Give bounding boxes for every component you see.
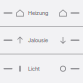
button[interactable]: Licht on: [14, 54, 26, 83]
button[interactable]: Licht off: [57, 54, 69, 83]
button[interactable]: Increase Jalousie: [69, 27, 81, 54]
button[interactable]: Heizung off: [57, 0, 69, 26]
button[interactable]: Increase Heizung: [69, 0, 81, 26]
button[interactable]: Jalousie on: [14, 27, 26, 54]
button[interactable]: Jalousie off: [57, 27, 69, 54]
staticText: Heizung: [28, 10, 48, 16]
button[interactable]: Decrease Jalousie: [2, 27, 14, 54]
button[interactable]: Decrease Licht: [2, 54, 14, 83]
button[interactable]: Decrease Heizung: [2, 0, 14, 26]
staticText: Licht: [28, 65, 40, 72]
button[interactable]: Heizung on: [14, 0, 26, 26]
staticText: Jalousie: [28, 37, 48, 43]
button[interactable]: Increase Licht: [69, 54, 81, 83]
